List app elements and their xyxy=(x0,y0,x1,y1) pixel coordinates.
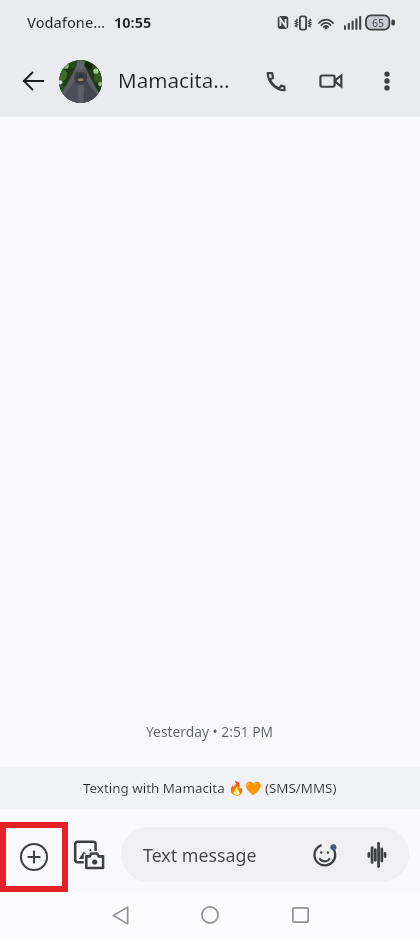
button[interactable]: Emoji xyxy=(306,835,346,875)
button[interactable]: Recent apps xyxy=(276,892,324,938)
button[interactable]: Home xyxy=(186,892,234,938)
staticText: Yesterday • 2:51 PM xyxy=(146,722,274,741)
staticText: Mamacita… xyxy=(118,66,230,94)
button[interactable]: Gallery and camera xyxy=(67,833,111,877)
button[interactable]: More options xyxy=(365,59,409,103)
button[interactable]: Back xyxy=(96,892,144,938)
staticText: Texting with Mamacita 🔥🧡 (SMS/MMS) xyxy=(83,779,337,797)
staticText: Vodafone… xyxy=(27,12,105,32)
button[interactable]: Call xyxy=(253,59,297,103)
staticText: 10:55 xyxy=(114,12,152,32)
button[interactable]: Voice message xyxy=(357,835,397,875)
button[interactable]: Add attachment xyxy=(6,828,62,886)
button[interactable]: Back xyxy=(11,59,55,103)
button[interactable]: Video call xyxy=(309,59,353,103)
button[interactable]: Text message xyxy=(121,827,409,882)
button[interactable]: Contact photo xyxy=(59,60,102,103)
staticText: Text message xyxy=(143,843,257,867)
staticText: 65 xyxy=(372,16,385,30)
